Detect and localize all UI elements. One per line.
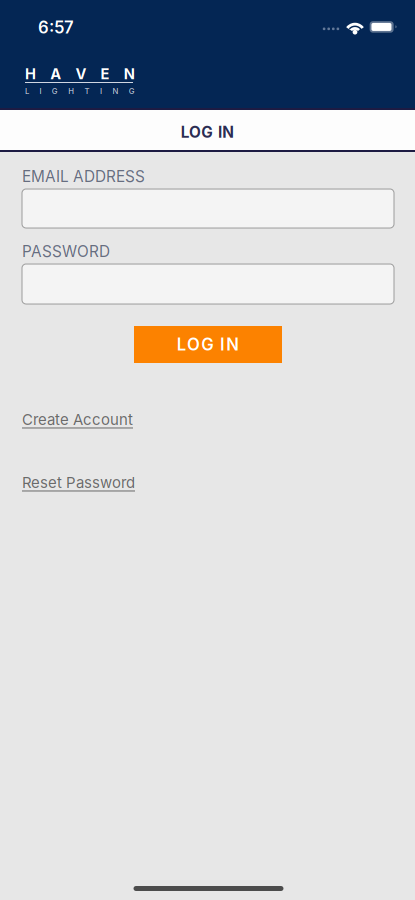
staticText: G — [52, 86, 58, 96]
staticText: LOG IN — [181, 123, 234, 142]
staticText: Reset Password — [22, 473, 135, 492]
staticText: 6:57 — [38, 17, 74, 38]
staticText: LOG IN — [177, 334, 239, 355]
staticText: V — [75, 65, 86, 83]
staticText: N — [112, 86, 118, 96]
staticText: N — [124, 65, 135, 83]
staticText: G — [129, 86, 135, 96]
staticText: A — [50, 65, 61, 83]
staticText: T — [85, 86, 90, 96]
staticText: L — [25, 86, 29, 96]
staticText: Create Account — [22, 410, 133, 429]
button[interactable]: LOG IN — [134, 326, 282, 363]
staticText: H — [68, 86, 74, 96]
staticText: EMAIL ADDRESS — [22, 167, 145, 186]
staticText: H — [25, 65, 36, 83]
button[interactable]: Reset Password — [22, 473, 135, 492]
staticText: E — [101, 65, 110, 83]
staticText: I — [100, 86, 102, 96]
button[interactable]: LOG IN — [0, 110, 415, 150]
button[interactable]: Create Account — [22, 410, 133, 429]
staticText: I — [39, 86, 41, 96]
staticText: PASSWORD — [22, 242, 110, 261]
